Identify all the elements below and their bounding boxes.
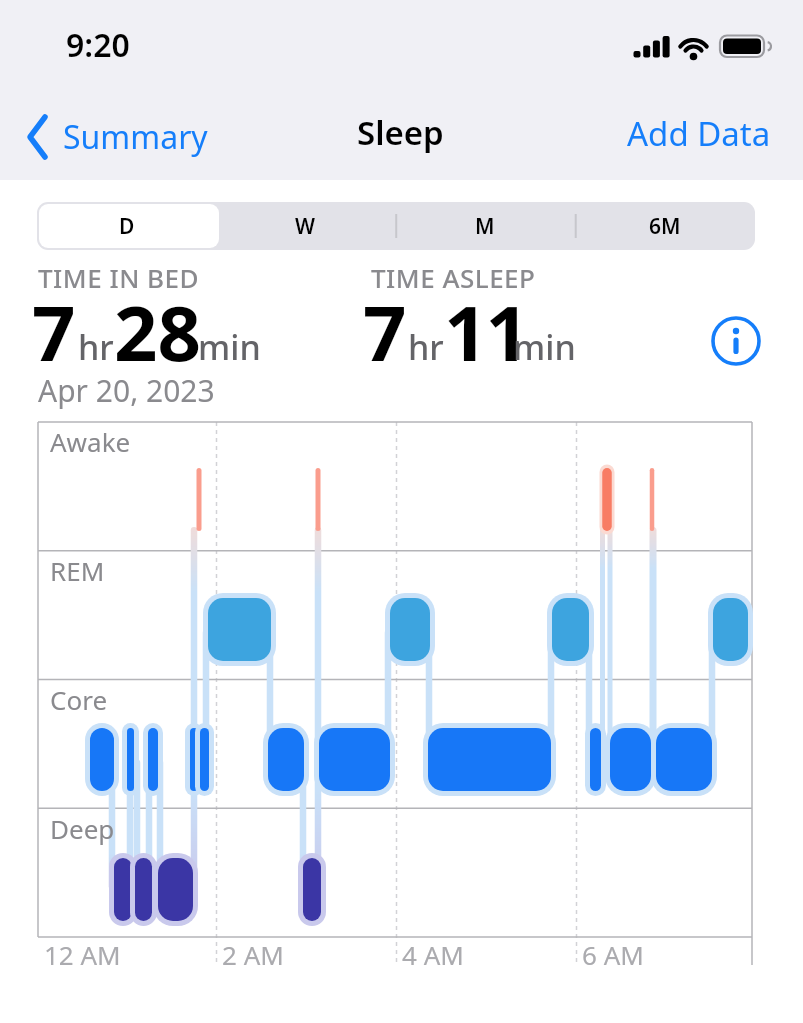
staticText: M: [475, 212, 495, 241]
staticText: TIME ASLEEP: [371, 260, 536, 295]
staticText: 2 AM: [222, 937, 284, 972]
staticText: W: [295, 212, 316, 241]
staticText: Deep: [50, 811, 115, 846]
staticText: Awake: [50, 424, 131, 459]
staticText: REM: [50, 553, 105, 588]
staticText: 7: [32, 280, 76, 384]
staticText: 6M: [649, 212, 681, 241]
button[interactable]: W: [216, 202, 395, 250]
staticText: Apr 20, 2023: [38, 370, 215, 411]
staticText: 28: [114, 280, 201, 384]
button[interactable]: [710, 315, 762, 367]
staticText: TIME IN BED: [38, 260, 200, 295]
button[interactable]: D: [37, 202, 216, 250]
staticText: 9:20: [66, 23, 130, 67]
staticText: 11: [444, 280, 527, 384]
staticText: min: [513, 324, 576, 370]
staticText: 6 AM: [582, 937, 644, 972]
staticText: min: [198, 324, 261, 370]
staticText: 7: [363, 280, 407, 384]
staticText: hr: [408, 324, 444, 370]
staticText: 4 AM: [402, 937, 464, 972]
staticText: D: [119, 212, 135, 241]
staticText: Core: [50, 682, 108, 717]
staticText: hr: [78, 324, 114, 370]
button[interactable]: Add Data: [0, 0, 144, 45]
button[interactable]: M: [395, 202, 575, 250]
button[interactable]: Summary: [24, 112, 208, 162]
staticText: 12 AM: [44, 937, 121, 972]
staticText: Summary: [63, 115, 208, 159]
staticText: Sleep: [357, 110, 444, 155]
button[interactable]: 6M: [575, 202, 755, 250]
